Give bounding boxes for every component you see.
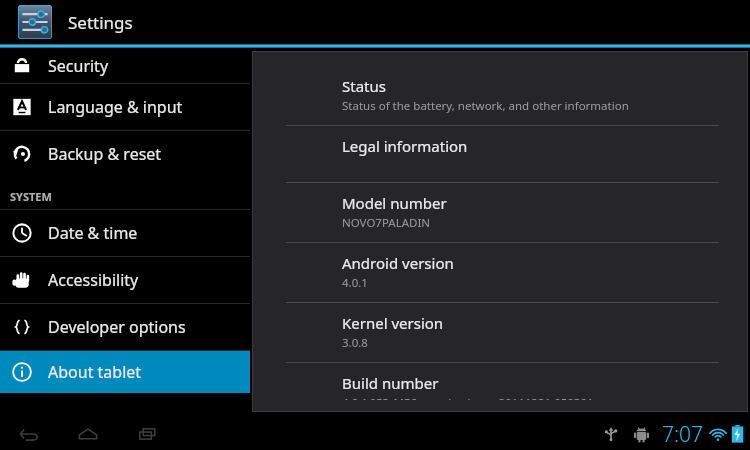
staticText: 7:07 — [662, 420, 704, 449]
button[interactable]: Build number — [253, 363, 747, 411]
staticText: Android version — [342, 253, 454, 273]
staticText: Language & input — [48, 96, 183, 118]
staticText: Status of the battery, network, and othe… — [342, 98, 629, 114]
button[interactable]: Model number — [253, 183, 747, 242]
button[interactable]: Accessibility — [0, 257, 250, 303]
button[interactable]: Android version — [253, 243, 747, 302]
staticText: Date & time — [48, 222, 138, 244]
button[interactable]: Back — [8, 419, 48, 449]
button[interactable]: Date & time — [0, 210, 250, 256]
staticText: Model number — [342, 193, 447, 213]
staticText: Developer options — [48, 316, 186, 338]
staticText: SYSTEM — [10, 189, 52, 204]
staticText: Build number — [342, 373, 439, 393]
staticText: About tablet — [48, 361, 142, 383]
staticText: 3.0.8 — [342, 335, 368, 351]
staticText: NOVO7PALADIN — [342, 215, 431, 231]
button[interactable]: About tablet — [0, 351, 250, 393]
staticText: Settings — [68, 11, 133, 34]
staticText: Accessibility — [48, 269, 139, 291]
staticText: Backup & reset — [48, 143, 162, 165]
button[interactable]: Recent apps — [128, 419, 168, 449]
button[interactable]: Security — [0, 48, 250, 83]
staticText: 4.0.1 — [342, 275, 368, 291]
button[interactable]: Settings — [18, 5, 52, 39]
button[interactable]: Backup & reset — [0, 131, 250, 177]
button[interactable]: Language & input — [0, 84, 250, 130]
staticText: Security — [48, 55, 109, 77]
staticText: Status — [342, 76, 386, 96]
button[interactable]: Developer options — [0, 304, 250, 350]
staticText: Legal information — [342, 136, 468, 156]
button[interactable]: Status — [253, 66, 747, 125]
staticText: Kernel version — [342, 313, 444, 333]
button[interactable]: Legal information — [253, 126, 747, 182]
button[interactable]: Home — [68, 419, 108, 449]
staticText: 4.0.1 ICS_MR0 eng.dmzhang.20111221.05030… — [342, 395, 594, 400]
button[interactable]: Kernel version — [253, 303, 747, 362]
